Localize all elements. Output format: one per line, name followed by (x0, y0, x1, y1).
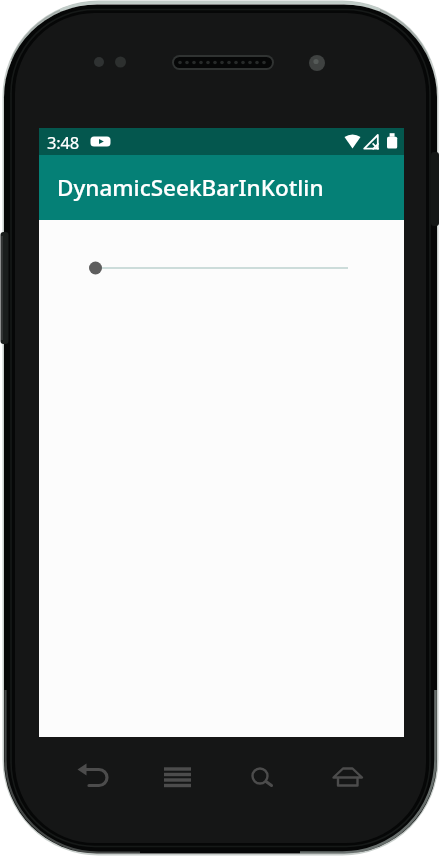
button[interactable] (328, 758, 368, 796)
button[interactable] (240, 758, 280, 796)
button[interactable] (72, 758, 112, 796)
staticText: 3:48 (47, 131, 79, 153)
button[interactable] (158, 758, 198, 796)
staticText: DynamicSeekBarInKotlin (57, 172, 324, 203)
button[interactable] (81, 253, 356, 283)
button[interactable]: DynamicSeekBarInKotlin (39, 155, 404, 220)
